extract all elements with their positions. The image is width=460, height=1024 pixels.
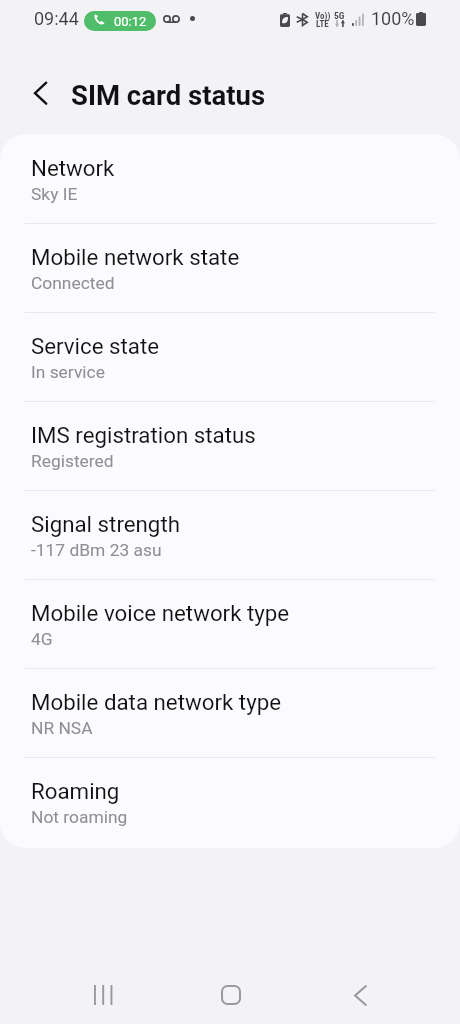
staticText: NR NSA xyxy=(31,718,93,738)
staticText: LTE xyxy=(316,19,329,30)
staticText: 4G xyxy=(31,629,53,649)
staticText: 09:44 xyxy=(34,8,79,29)
staticText: Mobile network state xyxy=(31,244,240,270)
button[interactable]: Recent apps xyxy=(68,967,136,1023)
staticText: In service xyxy=(31,362,105,382)
button[interactable]: Mobile data network type xyxy=(0,668,460,757)
staticText: Mobile data network type xyxy=(31,689,282,715)
button[interactable]: Network xyxy=(0,134,460,223)
staticText: Service state xyxy=(31,333,160,359)
button[interactable]: Signal strength xyxy=(0,490,460,579)
staticText: Connected xyxy=(31,273,115,293)
button[interactable]: Back xyxy=(326,967,394,1023)
staticText: IMS registration status xyxy=(31,422,256,448)
staticText: Not roaming xyxy=(31,807,128,827)
staticText: 5G xyxy=(334,10,345,21)
button[interactable]: Home xyxy=(197,967,265,1023)
button[interactable]: Mobile voice network type xyxy=(0,579,460,668)
staticText: Mobile voice network type xyxy=(31,600,290,626)
staticText: Registered xyxy=(31,451,114,471)
staticText: Roaming xyxy=(31,778,120,804)
staticText: 100% xyxy=(371,8,415,29)
button[interactable]: Mobile network state xyxy=(0,223,460,312)
button[interactable]: Service state xyxy=(0,312,460,401)
staticText: Signal strength xyxy=(31,511,180,537)
staticText: SIM card status xyxy=(71,79,266,111)
button[interactable]: IMS registration status xyxy=(0,401,460,490)
button[interactable]: Navigate up xyxy=(22,78,52,108)
staticText: 00:12 xyxy=(114,14,147,29)
staticText: Sky IE xyxy=(31,184,78,204)
staticText: -117 dBm 23 asu xyxy=(31,540,162,560)
staticText: Network xyxy=(31,155,115,181)
staticText: Vo)) xyxy=(315,11,331,22)
button[interactable]: Roaming xyxy=(0,757,460,846)
